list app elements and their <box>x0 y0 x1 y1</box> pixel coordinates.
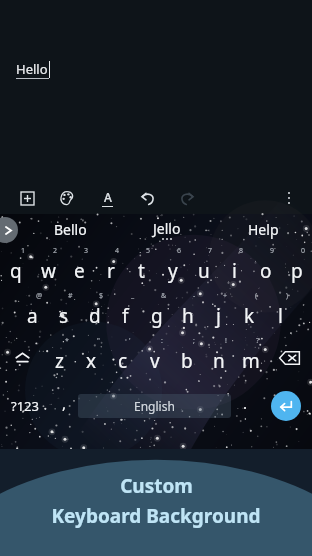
staticText: 9 <box>270 246 275 256</box>
staticText: e <box>74 258 85 284</box>
staticText: i <box>232 258 237 284</box>
button[interactable]: 6 <box>157 245 188 290</box>
staticText: 3 <box>84 246 89 256</box>
staticText: Jello <box>153 219 181 238</box>
staticText: 7 <box>208 246 213 256</box>
button[interactable]: 0 <box>281 245 312 290</box>
button[interactable]: 9 <box>250 245 281 290</box>
staticText: z <box>55 348 64 374</box>
button[interactable]: English <box>78 394 231 418</box>
staticText: Custom <box>120 473 193 499</box>
button[interactable]: ; <box>171 335 203 380</box>
button[interactable]: , <box>50 380 78 432</box>
staticText: g <box>151 303 163 329</box>
button[interactable]: Insert <box>10 182 44 214</box>
staticText: 0 <box>301 246 306 256</box>
staticText: @ <box>36 291 43 301</box>
staticText: ' <box>129 336 131 346</box>
staticText: ! <box>225 336 227 346</box>
staticText: ( <box>255 291 258 301</box>
button[interactable]: - <box>172 290 203 335</box>
button[interactable]: _ <box>110 290 141 335</box>
button[interactable]: 4 <box>95 245 126 290</box>
staticText: x <box>86 348 97 374</box>
button[interactable]: * <box>44 335 75 380</box>
staticText: f <box>122 303 129 329</box>
staticText: 4 <box>115 246 120 256</box>
button[interactable]: Text format <box>90 182 124 214</box>
button[interactable]: Shift <box>0 335 44 380</box>
staticText: t <box>138 258 145 284</box>
button[interactable]: ?123 <box>0 380 50 432</box>
staticText: r <box>107 258 115 284</box>
button[interactable]: ' <box>107 335 139 380</box>
staticText: ?123 <box>11 397 39 415</box>
button[interactable]: : <box>139 335 171 380</box>
button[interactable]: ( <box>234 290 265 335</box>
staticText: o <box>260 258 272 284</box>
button[interactable]: Expand toolbar <box>0 217 18 243</box>
staticText: a <box>27 303 38 329</box>
button[interactable]: " <box>75 335 107 380</box>
staticText: v <box>150 348 160 374</box>
staticText: 1 <box>21 246 26 256</box>
staticText: p <box>291 258 303 284</box>
staticText: ? <box>256 336 260 346</box>
staticText: l <box>278 303 283 329</box>
button[interactable]: ! <box>203 335 235 380</box>
button[interactable]: Enter <box>259 380 312 432</box>
staticText: j <box>216 303 221 329</box>
staticText: + <box>223 291 228 301</box>
button[interactable]: @ <box>17 290 48 335</box>
button[interactable]: 2 <box>32 245 64 290</box>
staticText: . <box>243 393 248 413</box>
button[interactable]: Undo <box>130 182 164 214</box>
staticText: 5 <box>146 246 151 256</box>
button[interactable]: 3 <box>64 245 95 290</box>
staticText: & <box>161 291 167 301</box>
staticText: s <box>59 303 69 329</box>
staticText: c <box>118 348 128 374</box>
staticText: # <box>68 291 73 301</box>
button[interactable]: ? <box>235 335 267 380</box>
staticText: A <box>104 189 112 205</box>
button[interactable]: Bello <box>22 214 118 245</box>
button[interactable]: Backspace <box>267 335 312 380</box>
button[interactable]: # <box>48 290 79 335</box>
staticText: 6 <box>177 246 182 256</box>
button[interactable]: Color palette <box>50 182 84 214</box>
button[interactable]: 7 <box>188 245 219 290</box>
staticText: $ <box>99 291 104 301</box>
button[interactable]: Help <box>215 214 312 245</box>
staticText: 8 <box>239 246 244 256</box>
staticText: n <box>213 348 225 374</box>
staticText: " <box>97 336 100 346</box>
staticText: m <box>242 348 260 374</box>
button[interactable]: ) <box>265 290 296 335</box>
button[interactable]: + <box>203 290 234 335</box>
staticText: k <box>244 303 255 329</box>
button[interactable]: & <box>141 290 172 335</box>
button[interactable]: 5 <box>126 245 157 290</box>
button[interactable]: Jello <box>118 214 215 245</box>
button[interactable]: $ <box>79 290 110 335</box>
staticText: * <box>65 336 69 346</box>
button[interactable]: 1 <box>0 245 32 290</box>
staticText: : <box>161 336 163 346</box>
staticText: , <box>62 393 67 413</box>
staticText: Hello <box>16 60 48 78</box>
staticText: b <box>181 348 193 374</box>
staticText: _ <box>131 291 135 301</box>
staticText: - <box>193 291 196 301</box>
button[interactable]: More options <box>272 182 306 214</box>
staticText: Bello <box>54 220 87 239</box>
button[interactable]: Redo <box>170 182 204 214</box>
staticText: y <box>168 258 178 284</box>
staticText: w <box>41 258 56 284</box>
staticText: ; <box>193 336 195 346</box>
button[interactable]: 8 <box>219 245 250 290</box>
button[interactable]: . <box>231 380 259 432</box>
staticText: q <box>10 258 22 284</box>
staticText: Keyboard Background <box>51 503 261 529</box>
staticText: d <box>89 303 101 329</box>
